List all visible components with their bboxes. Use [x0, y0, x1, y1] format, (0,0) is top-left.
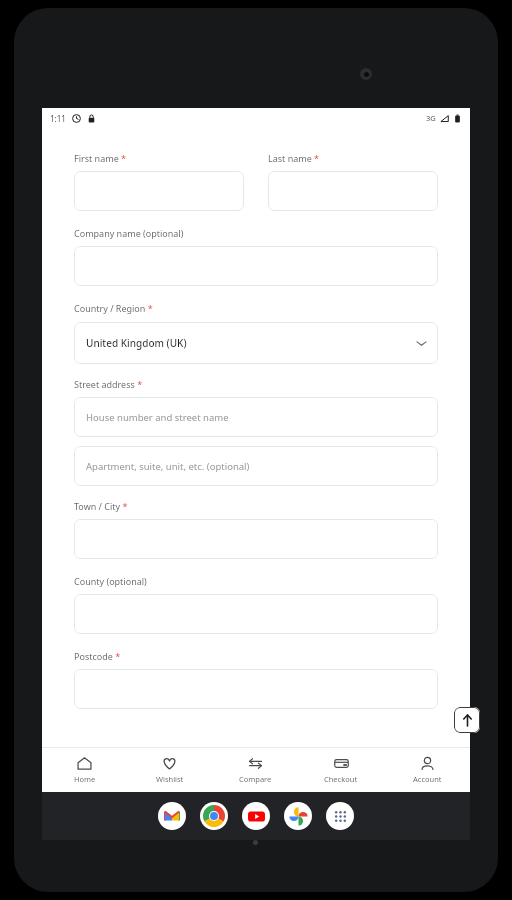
staticText: Last name *	[268, 152, 320, 164]
button[interactable]	[268, 171, 438, 211]
staticText: Checkout	[324, 774, 358, 784]
button[interactable]: YouTube	[242, 802, 270, 830]
button[interactable]: Scroll to top	[454, 707, 480, 733]
button[interactable]: Compare	[212, 748, 298, 792]
staticText: Account	[413, 774, 442, 784]
staticText: House number and street name	[86, 411, 229, 424]
button[interactable]: United Kingdom (UK)	[74, 322, 438, 364]
button[interactable]: Home	[42, 748, 127, 792]
staticText: First name *	[74, 152, 127, 164]
button[interactable]: Apps	[326, 802, 354, 830]
button[interactable]: Checkout	[298, 748, 384, 792]
button[interactable]	[74, 669, 438, 709]
button[interactable]: Apartment, suite, unit, etc. (optional)	[74, 446, 438, 486]
button[interactable]: Gmail	[158, 802, 186, 830]
staticText: Postcode *	[74, 650, 121, 662]
button[interactable]: Google Photos	[284, 802, 312, 830]
button[interactable]: House number and street name	[74, 397, 438, 437]
button[interactable]: Wishlist	[127, 748, 212, 792]
staticText: Wishlist	[156, 774, 184, 784]
staticText: Compare	[239, 774, 272, 784]
button[interactable]	[74, 171, 244, 211]
staticText: Apartment, suite, unit, etc. (optional)	[86, 460, 250, 473]
staticText: Home	[74, 774, 96, 784]
button[interactable]	[74, 246, 438, 286]
staticText: Country / Region *	[74, 302, 153, 314]
staticText: County (optional)	[74, 575, 147, 587]
staticText: 3G	[426, 113, 436, 123]
button[interactable]: Account	[384, 748, 470, 792]
staticText: Town / City *	[74, 500, 128, 512]
staticText: Company name (optional)	[74, 227, 184, 239]
staticText: 1:11	[50, 113, 66, 124]
button[interactable]: Chrome	[200, 802, 228, 830]
button[interactable]	[74, 594, 438, 634]
staticText: United Kingdom (UK)	[86, 336, 187, 350]
staticText: Street address *	[74, 378, 143, 390]
button[interactable]	[74, 519, 438, 559]
